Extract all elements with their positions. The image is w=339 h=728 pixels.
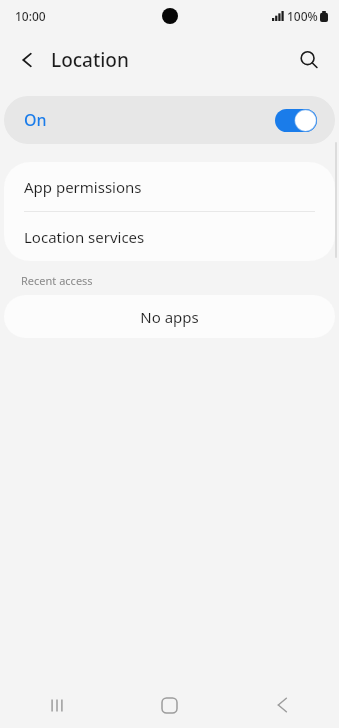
button[interactable]: Back: [8, 40, 48, 80]
staticText: No apps: [140, 307, 199, 327]
staticText: Location services: [24, 227, 145, 247]
button[interactable]: Recents: [0, 682, 113, 728]
button[interactable]: Search: [289, 40, 329, 80]
staticText: App permissions: [24, 177, 142, 197]
staticText: On: [24, 109, 47, 131]
button[interactable]: No apps: [4, 295, 335, 338]
staticText: Recent access: [21, 273, 93, 288]
button[interactable]: Location services: [4, 212, 335, 261]
button[interactable]: On: [4, 96, 335, 144]
staticText: 10:00: [15, 8, 46, 24]
button[interactable]: Back: [226, 682, 339, 728]
button[interactable]: App permissions: [4, 162, 335, 211]
staticText: 100%: [287, 8, 318, 24]
button[interactable]: Home: [113, 682, 226, 728]
staticText: Location: [51, 47, 129, 73]
